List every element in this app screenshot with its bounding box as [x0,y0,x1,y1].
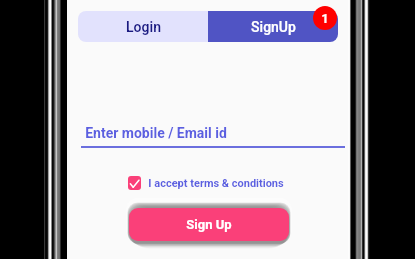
staticText: I accept terms & conditions [148,177,284,190]
staticText: SignUp [251,19,296,35]
button[interactable]: SignUp [208,11,338,42]
staticText: Login [126,19,161,35]
button[interactable]: 1 new notification [313,6,337,30]
staticText: Sign Up [186,217,232,232]
button[interactable]: I accept terms & conditions [128,175,284,191]
staticText: 1 [321,11,329,26]
staticText: Enter mobile / Email id [85,125,227,141]
button[interactable]: Enter mobile / Email id [82,120,344,148]
button[interactable]: Sign Up [129,208,289,241]
button[interactable]: Login [78,11,208,42]
